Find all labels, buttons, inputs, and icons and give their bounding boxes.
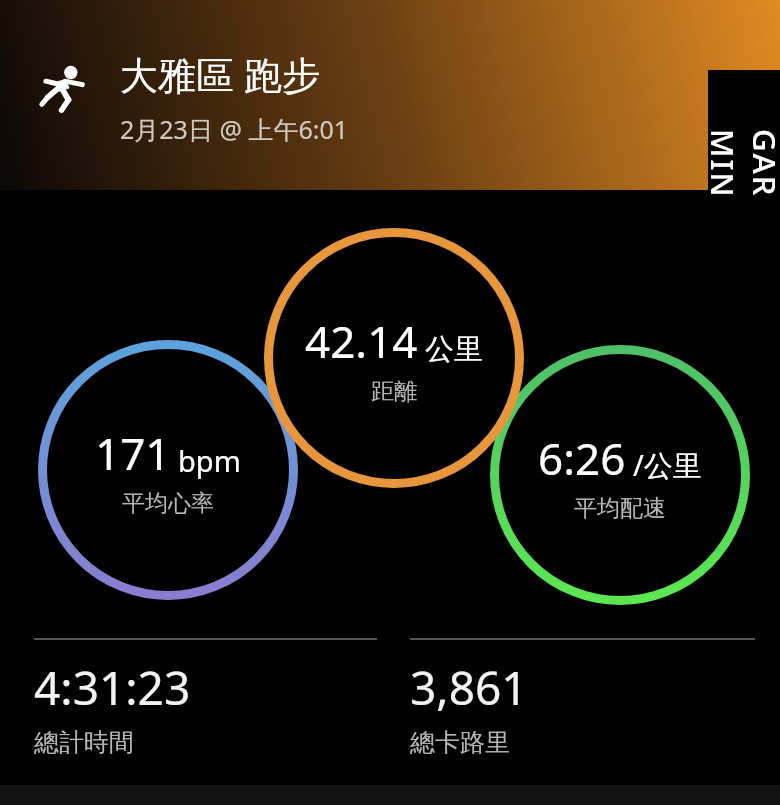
staticText: 4:31:23 (34, 656, 191, 719)
staticText: 平均心率 (122, 489, 214, 518)
staticText: 3,861 (410, 656, 528, 719)
staticText: 171 (95, 423, 171, 483)
staticText: 6:26 (538, 428, 626, 488)
button[interactable]: Garmin (708, 70, 780, 260)
staticText: 公里 (425, 331, 483, 368)
staticText: 平均配速 (574, 494, 666, 523)
staticText: /公里 (633, 445, 702, 485)
staticText: 總卡路里 (410, 727, 510, 758)
button[interactable]: Total calories 3,861 (410, 638, 755, 758)
staticText: 2月23日 @ 上午6:01 (120, 112, 348, 146)
button[interactable]: Distance 42.14 kilometres (264, 228, 524, 488)
button[interactable]: Average pace 6:26 per kilometre (490, 345, 750, 605)
button[interactable]: Average heart rate 171 bpm (38, 340, 298, 600)
staticText: bpm (178, 441, 241, 480)
button[interactable]: Running activity (36, 58, 94, 116)
button[interactable]: Total time 4:31:23 (34, 638, 377, 758)
staticText: 距離 (371, 377, 417, 406)
staticText: 總計時間 (34, 727, 134, 758)
staticText: GARMIN (702, 129, 780, 201)
staticText: 大雅區 跑步 (120, 48, 320, 100)
staticText: 42.14 (305, 311, 418, 371)
